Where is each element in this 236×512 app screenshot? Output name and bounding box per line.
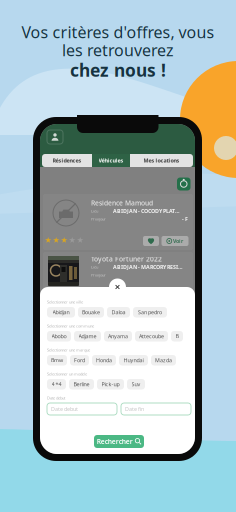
button[interactable]: Pick-up — [97, 379, 124, 389]
staticText: 4 *4 — [51, 381, 61, 388]
staticText: Mazda — [155, 357, 172, 364]
button[interactable]: Huyndai — [119, 355, 148, 365]
staticText: Lieu — [91, 208, 98, 214]
staticText: Bouake — [82, 309, 100, 316]
staticText: Mes locations — [143, 157, 179, 164]
staticText: Adjame — [78, 333, 96, 340]
button[interactable]: Favori — [143, 236, 159, 246]
button[interactable]: Mazda — [151, 355, 176, 365]
staticText: chez nous ! — [70, 58, 166, 81]
button[interactable]: Daloa — [107, 307, 130, 317]
button[interactable]: Voir — [161, 236, 188, 246]
staticText: ABIDJAN - COCODY PLAT… — [113, 207, 180, 215]
button[interactable]: Adjame — [74, 331, 101, 341]
button[interactable]: Véhicules — [92, 154, 130, 167]
button[interactable]: 4 *4 — [47, 379, 66, 389]
button[interactable]: Suv — [127, 379, 145, 389]
staticText: Prix/jour — [91, 272, 106, 278]
staticText: ABIDJAN - MARCORY RESI… — [113, 263, 183, 271]
button[interactable]: Honda — [92, 355, 116, 365]
button[interactable]: Abobo — [47, 331, 71, 341]
staticText: Berline — [73, 381, 89, 388]
staticText: Daloa — [111, 309, 125, 316]
staticText: Rechercher — [97, 437, 133, 446]
button[interactable]: Rechercher — [94, 435, 144, 448]
button[interactable]: Anyama — [104, 331, 132, 341]
staticText: Toyota Fortuner 2022 — [91, 255, 162, 263]
button[interactable]: Résidences — [42, 154, 92, 167]
button[interactable]: Fermer — [109, 278, 126, 295]
staticText: Selectionner une marque — [47, 347, 90, 353]
button[interactable]: Mes locations — [130, 154, 193, 167]
button[interactable]: B — [171, 331, 183, 341]
staticText: Vos critères d'offres, vous — [21, 21, 214, 43]
staticText: Selectionner une ville — [47, 299, 83, 305]
staticText: Abidjan — [52, 309, 69, 316]
staticText: Abobo — [51, 333, 66, 340]
button[interactable]: Bouake — [78, 307, 104, 317]
button[interactable]: Toyota Fortuner 2022 — [40, 250, 195, 308]
staticText: Ford — [74, 357, 85, 364]
staticText: les retrouverez — [62, 39, 174, 61]
button[interactable]: Date fin — [121, 403, 191, 415]
staticText: Honda — [96, 357, 112, 364]
staticText: Attecoube — [139, 333, 164, 340]
button[interactable]: Date debut — [47, 403, 117, 415]
button[interactable]: Bmw — [47, 355, 67, 365]
staticText: Véhicules — [98, 157, 123, 164]
staticText: Anyama — [108, 333, 128, 340]
button[interactable]: San pedro — [133, 307, 167, 317]
staticText: Voir — [173, 237, 183, 245]
button[interactable]: Berline — [69, 379, 94, 389]
staticText: Pick-up — [101, 381, 119, 388]
button[interactable]: Compte — [47, 130, 63, 144]
staticText: B — [175, 333, 178, 340]
button[interactable]: Ford — [70, 355, 89, 365]
staticText: Bmw — [51, 357, 63, 364]
button[interactable]: Filtrer — [177, 177, 190, 190]
staticText: Résidences — [52, 157, 81, 164]
staticText: Residence Mamoud — [91, 199, 153, 207]
staticText: - F — [182, 215, 188, 223]
staticText: Selectionner un modele — [47, 371, 87, 377]
staticText: Date debut — [47, 395, 65, 401]
staticText: Huyndai — [123, 357, 143, 364]
staticText: Date debut — [51, 405, 78, 413]
staticText: Selectionner une commune — [47, 323, 94, 329]
staticText: Suv — [131, 381, 140, 388]
button[interactable]: Attecoube — [135, 331, 168, 341]
staticText: San pedro — [138, 309, 162, 316]
staticText: Lieu — [91, 264, 98, 270]
button[interactable]: Residence Mamoud — [40, 192, 195, 250]
staticText: Prix/jour — [91, 216, 106, 222]
staticText: Date fin — [125, 405, 144, 413]
button[interactable]: Abidjan — [47, 307, 75, 317]
